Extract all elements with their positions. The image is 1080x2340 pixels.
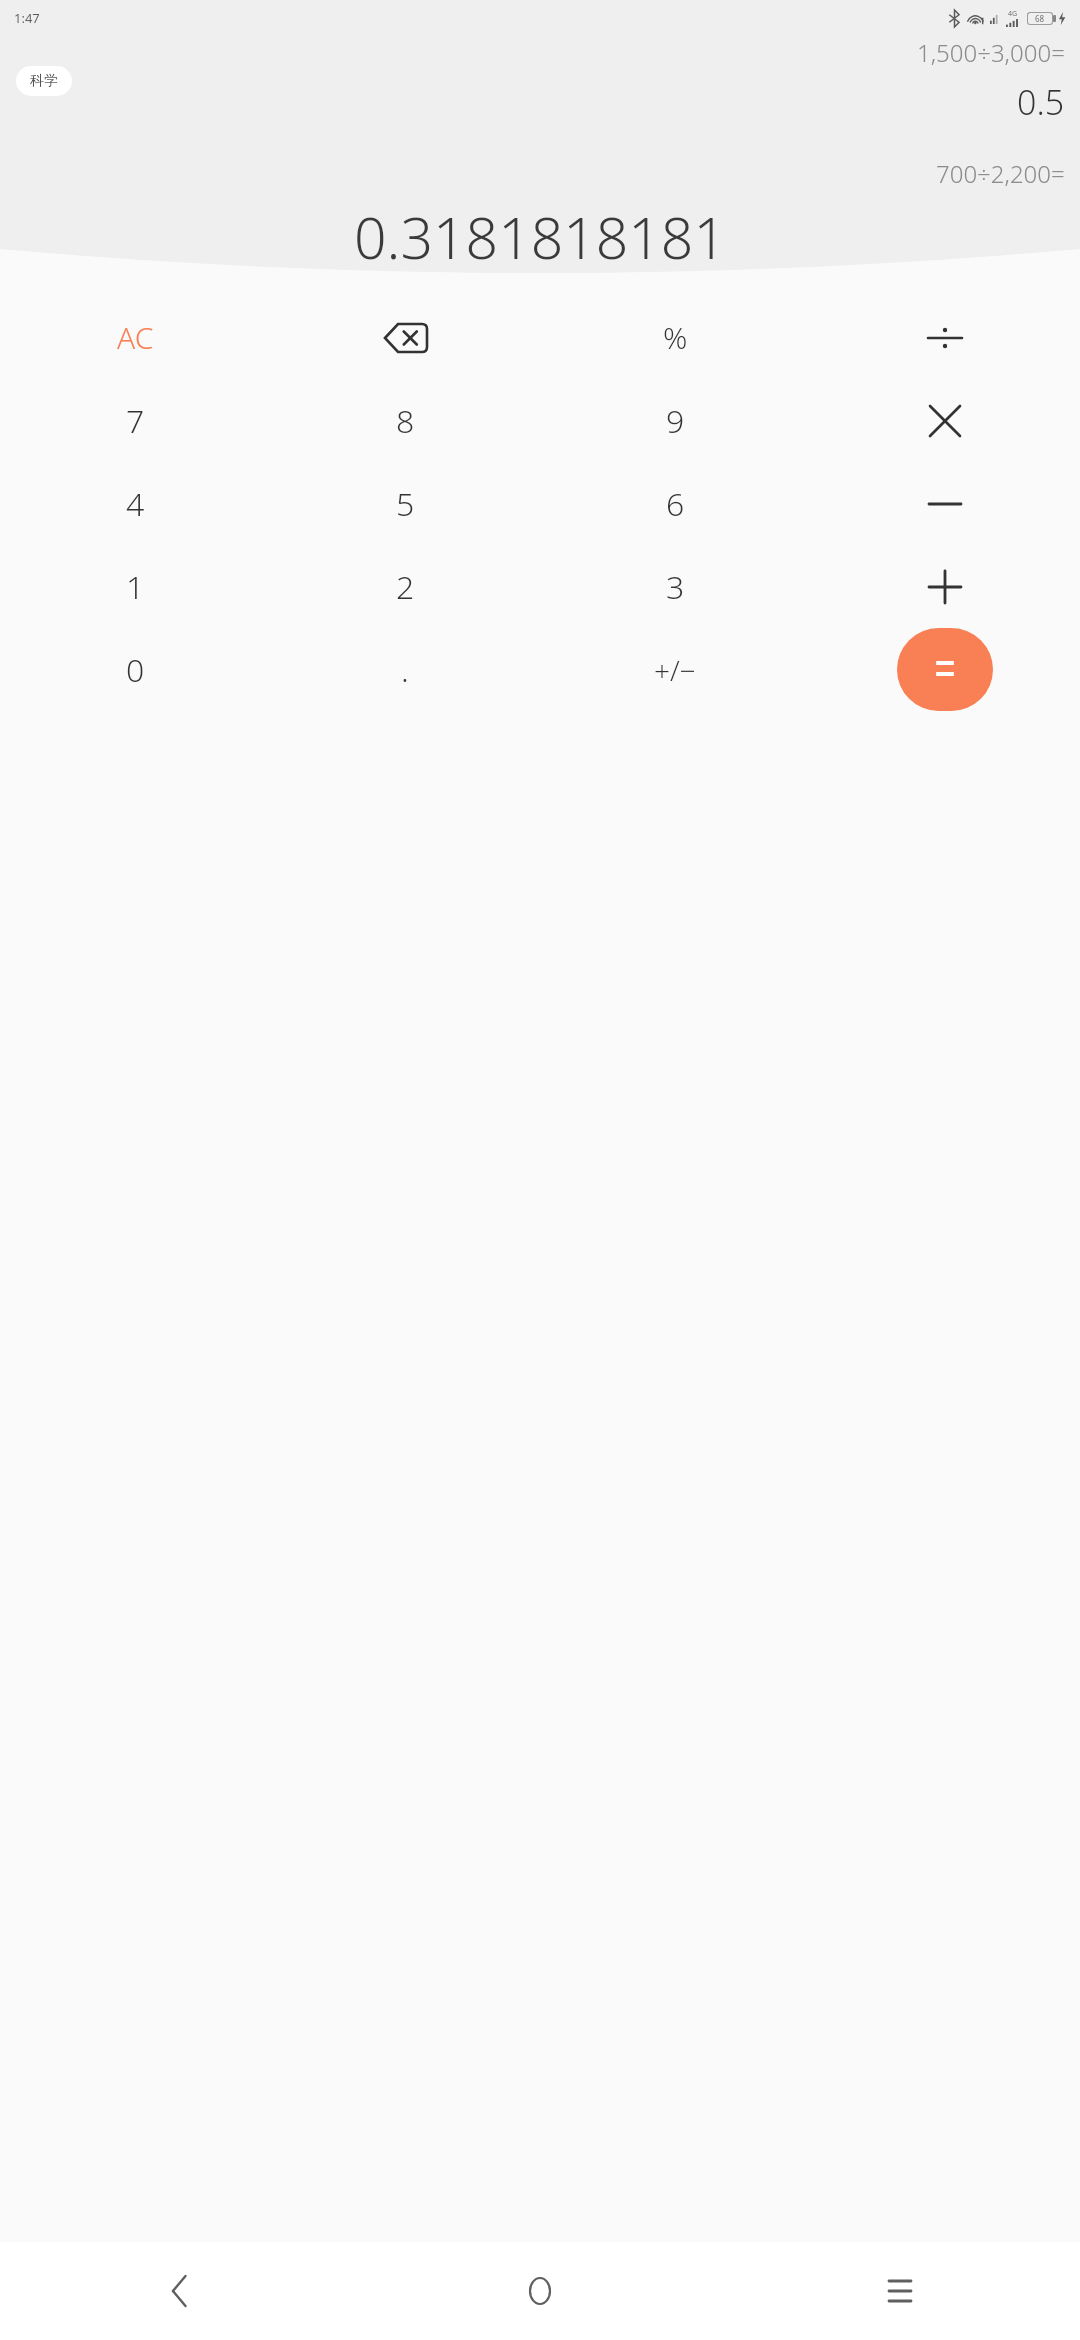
button[interactable]: Divide — [810, 296, 1080, 379]
staticText: 2 — [396, 565, 415, 609]
staticText: 700÷2,200= — [936, 157, 1065, 190]
button[interactable]: Equals — [897, 628, 993, 711]
staticText: % — [663, 317, 688, 358]
button[interactable]: 3 — [540, 545, 810, 628]
button[interactable]: Plus — [810, 545, 1080, 628]
staticText: 5 — [396, 482, 415, 526]
staticText: 科学 — [30, 72, 58, 90]
button[interactable]: 7 — [0, 379, 270, 462]
button[interactable]: Multiply — [810, 379, 1080, 462]
button[interactable]: Minus — [810, 462, 1080, 545]
staticText: 7 — [126, 399, 145, 443]
staticText: 0 — [126, 648, 145, 692]
staticText: AC — [117, 317, 154, 358]
staticText: 0.3181818181 — [354, 198, 726, 273]
staticText: 0.5 — [1017, 79, 1065, 125]
button[interactable]: Backspace — [270, 296, 540, 379]
staticText: 1,500÷3,000= — [917, 36, 1065, 69]
button[interactable]: 5 — [270, 462, 540, 545]
button[interactable]: Back — [0, 2242, 360, 2340]
button[interactable]: % — [540, 296, 810, 379]
staticText: +/− — [654, 651, 696, 689]
button[interactable]: AC — [0, 296, 270, 379]
staticText: 6 — [666, 482, 685, 526]
staticText: 1 — [126, 565, 145, 609]
button[interactable]: 2 — [270, 545, 540, 628]
button[interactable]: Home — [360, 2242, 720, 2340]
button[interactable]: 9 — [540, 379, 810, 462]
staticText: 4G — [1008, 9, 1018, 19]
button[interactable]: +/− — [540, 628, 810, 711]
button[interactable]: 0 — [0, 628, 270, 711]
button[interactable]: 1 — [0, 545, 270, 628]
button[interactable]: 4 — [0, 462, 270, 545]
staticText: 8 — [396, 399, 415, 443]
staticText: . — [401, 648, 409, 692]
staticText: 4 — [126, 482, 145, 526]
button[interactable]: 6 — [540, 462, 810, 545]
button[interactable]: Recents — [720, 2242, 1080, 2340]
staticText: 3 — [666, 565, 685, 609]
staticText: 9 — [666, 399, 685, 443]
staticText: 68 — [1035, 13, 1045, 24]
button[interactable]: 8 — [270, 379, 540, 462]
staticText: 1:47 — [14, 9, 40, 27]
button[interactable]: 科学 — [16, 66, 72, 96]
